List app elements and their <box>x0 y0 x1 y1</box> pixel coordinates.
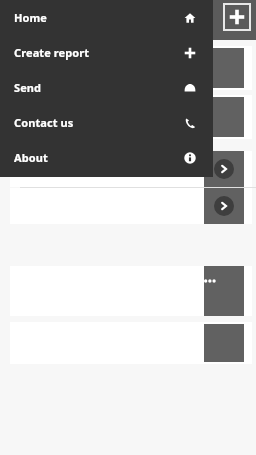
button[interactable] <box>10 322 252 364</box>
staticText: Contact us <box>14 115 74 130</box>
button[interactable] <box>10 95 252 139</box>
other: Open <box>214 196 234 216</box>
button[interactable]: Home <box>0 0 213 35</box>
button[interactable]: Open <box>10 151 252 187</box>
staticText: Create report <box>14 45 90 60</box>
button[interactable]: Add <box>223 3 251 31</box>
other: More options <box>204 278 218 284</box>
other: Open <box>214 159 234 179</box>
button[interactable]: Open <box>10 188 252 224</box>
button[interactable] <box>10 46 252 90</box>
staticText: Home <box>14 10 47 25</box>
button[interactable]: Contact us <box>0 105 213 140</box>
button[interactable]: About <box>0 140 213 175</box>
button[interactable]: Create report <box>0 35 213 70</box>
staticText: Send <box>14 80 42 95</box>
staticText: About <box>14 150 48 165</box>
button[interactable]: Send <box>0 70 213 105</box>
button[interactable]: More options <box>10 266 252 316</box>
